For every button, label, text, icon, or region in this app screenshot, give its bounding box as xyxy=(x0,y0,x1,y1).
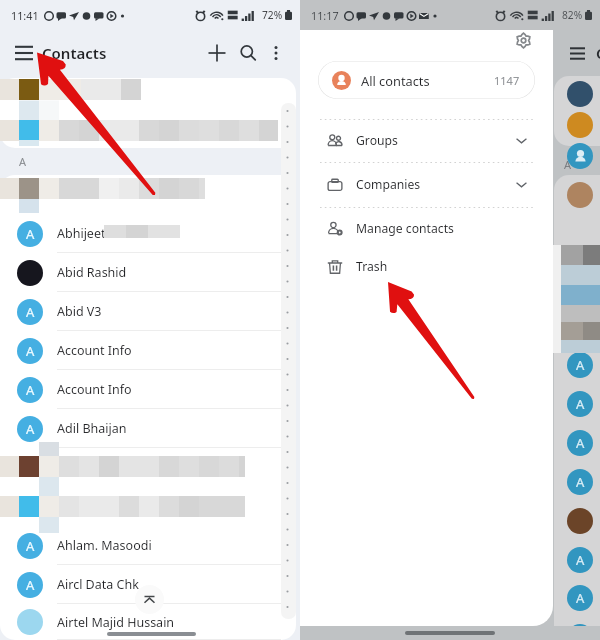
staticText: 1147 xyxy=(494,73,520,88)
staticText: Account Info xyxy=(57,342,132,359)
staticText: Contacts xyxy=(42,43,107,63)
staticText: Abid Rashid xyxy=(57,264,127,281)
staticText: 82% xyxy=(562,8,583,22)
button[interactable]: A xyxy=(0,331,296,370)
staticText: Abhijeet xyxy=(57,225,106,242)
staticText: A xyxy=(26,537,35,555)
staticText: Trash xyxy=(356,258,388,275)
button[interactable]: More options xyxy=(262,39,290,67)
staticText: Airtel Majid Hussain xyxy=(57,614,175,631)
staticText: 11:17 xyxy=(311,8,339,23)
button[interactable]: Settings xyxy=(510,27,536,53)
staticText: Groups xyxy=(356,132,398,149)
staticText: A xyxy=(26,576,35,594)
staticText: Adil Bhaijan xyxy=(57,420,127,437)
button[interactable]: A xyxy=(0,370,296,409)
staticText: A xyxy=(564,157,572,172)
button[interactable]: Manage contacts xyxy=(300,207,553,250)
button[interactable]: Abid Rashid xyxy=(0,253,296,292)
button[interactable]: Search xyxy=(234,39,262,67)
button[interactable]: Add contact xyxy=(203,39,231,67)
button[interactable]: Open navigation drawer xyxy=(4,33,44,73)
staticText: Companies xyxy=(356,176,421,193)
button[interactable]: Groups xyxy=(300,119,553,162)
button[interactable]: Airtel Majid Hussain xyxy=(0,604,296,640)
staticText: Ahlam. Masoodi xyxy=(57,537,152,554)
staticText: Aircl Data Chk xyxy=(57,576,139,593)
button[interactable]: A xyxy=(0,526,296,565)
button[interactable]: Scroll to top xyxy=(135,585,164,614)
staticText: A xyxy=(26,342,35,360)
staticText: A xyxy=(26,420,35,438)
button[interactable]: A xyxy=(0,292,296,331)
staticText: A xyxy=(576,395,585,413)
button[interactable]: All contacts xyxy=(318,61,535,99)
staticText: Account Info xyxy=(57,381,132,398)
staticText: A xyxy=(26,303,35,321)
button[interactable]: Trash xyxy=(300,245,553,288)
staticText: C xyxy=(596,43,600,63)
staticText: A xyxy=(576,551,585,569)
staticText: A xyxy=(576,434,585,452)
staticText: A xyxy=(26,225,35,243)
staticText: 72% xyxy=(262,8,283,22)
button[interactable]: A xyxy=(0,214,296,253)
button[interactable]: A xyxy=(0,409,296,448)
staticText: 11:41 xyxy=(11,8,39,23)
staticText: Manage contacts xyxy=(356,220,454,237)
staticText: A xyxy=(576,589,585,607)
button[interactable]: Companies xyxy=(300,163,553,206)
staticText: A xyxy=(26,381,35,399)
staticText: A xyxy=(19,154,27,169)
staticText: All contacts xyxy=(361,72,430,89)
staticText: A xyxy=(576,356,585,374)
button[interactable]: A xyxy=(0,565,296,604)
staticText: Abid V3 xyxy=(57,303,102,320)
staticText: A xyxy=(576,473,585,491)
